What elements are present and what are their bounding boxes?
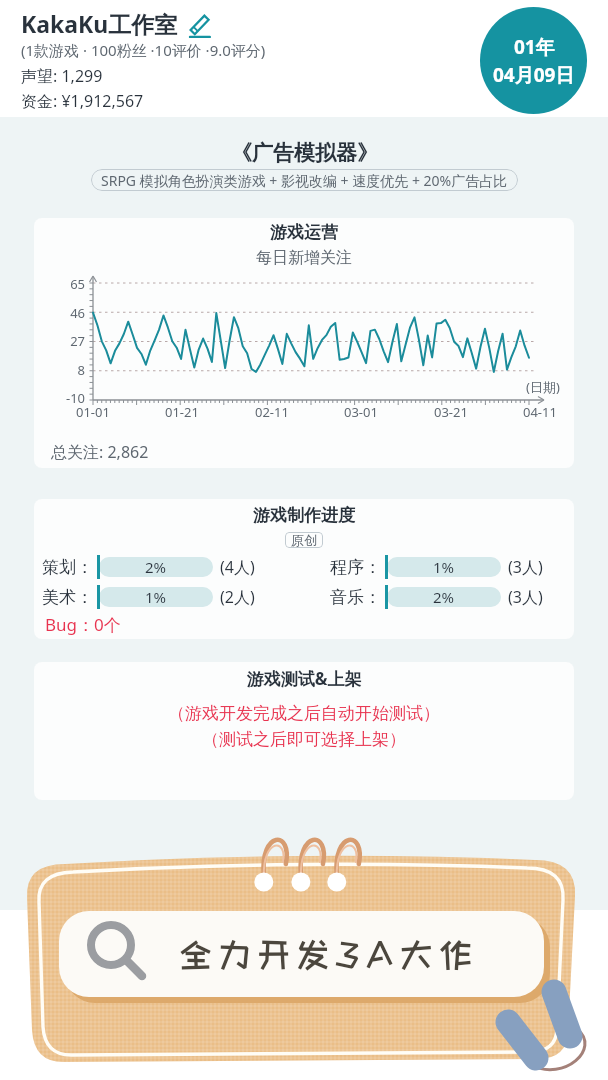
staticText: 声望: 1,299 [21,65,103,87]
staticText: 46 [34,304,85,322]
staticText: 总关注: 2,862 [51,441,149,463]
staticText: 全力开发3A大作 [179,936,478,972]
staticText: 游戏运营 [34,222,574,243]
staticText: 1% [433,557,455,577]
staticText: (3人) [508,586,543,608]
staticText: KakaKu工作室 [21,8,178,39]
staticText: -10 [34,389,85,407]
staticText: 03-21 [434,403,468,421]
button[interactable]: 编辑工作室名称 [184,9,214,39]
staticText: 音乐： [330,587,381,608]
staticText: SRPG 模拟角色扮演类游戏 + 影视改编 + 速度优先 + 20%广告占比 [101,171,508,190]
staticText: （游戏开发完成之后自动开始测试） [34,703,574,724]
staticText: 每日新增关注 [34,248,574,268]
staticText: 04-11 [523,403,557,421]
staticText: 2% [433,587,455,607]
staticText: (4人) [220,556,255,578]
staticText: 2% [145,557,167,577]
staticText: 原创 [291,532,317,548]
staticText: (1款游戏 · 100粉丝 ·10评价 ·9.0评分) [21,40,266,60]
staticText: 01-21 [165,403,199,421]
button[interactable]: 全力开发3A大作 [59,911,544,997]
staticText: 8 [34,361,85,379]
staticText: （测试之后即可选择上架） [34,729,574,750]
staticText: 策划： [42,557,93,578]
staticText: (2人) [220,586,255,608]
staticText: 01-01 [76,403,110,421]
staticText: 游戏制作进度 [34,505,574,526]
staticText: 03-01 [344,403,378,421]
staticText: (3人) [508,556,543,578]
staticText: 游戏测试&上架 [34,667,574,690]
staticText: Bug：0个 [45,613,121,636]
staticText: 01年 [514,34,555,60]
staticText: 程序： [330,557,381,578]
staticText: 65 [34,275,85,293]
staticText: 02-11 [255,403,289,421]
staticText: (日期) [526,378,560,396]
staticText: 《广告模拟器》 [231,140,378,166]
staticText: 1% [145,587,167,607]
staticText: 资金: ¥1,912,567 [21,90,144,112]
staticText: 04月09日 [493,62,575,88]
staticText: 美术： [42,587,93,608]
button[interactable]: 01年 [480,7,587,114]
staticText: 27 [34,332,85,350]
